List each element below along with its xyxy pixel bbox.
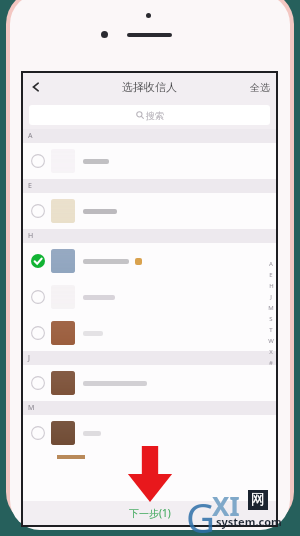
button[interactable]: 全选 <box>250 81 270 94</box>
staticText: M <box>28 403 35 413</box>
staticText: J <box>28 353 30 363</box>
button[interactable]: W <box>268 337 274 345</box>
button[interactable]: J <box>270 293 272 301</box>
button[interactable] <box>23 315 276 351</box>
button[interactable]: 下一步(1) <box>23 501 276 525</box>
button[interactable] <box>23 279 276 315</box>
staticText: 网 <box>251 491 265 509</box>
staticText: H <box>28 231 34 241</box>
button[interactable] <box>23 415 276 451</box>
button[interactable] <box>23 193 276 229</box>
button[interactable] <box>23 143 276 179</box>
staticText: 选择收信人 <box>122 80 177 94</box>
staticText: XI <box>212 488 240 523</box>
button[interactable] <box>23 365 276 401</box>
staticText: 下一步(1) <box>129 506 171 520</box>
button[interactable]: M <box>268 304 274 312</box>
button[interactable]: S <box>269 315 273 323</box>
staticText: A <box>28 131 33 141</box>
button[interactable]: 搜索 <box>29 105 270 125</box>
button[interactable]: X <box>269 348 273 356</box>
staticText: 搜索 <box>146 110 164 121</box>
staticText: 全选 <box>250 81 270 94</box>
button[interactable]: H <box>269 282 274 290</box>
button[interactable] <box>23 243 276 279</box>
staticText: system.com <box>216 514 282 529</box>
button[interactable]: Back <box>23 74 49 100</box>
button[interactable]: # <box>269 359 273 367</box>
staticText: G <box>186 490 216 536</box>
button[interactable]: E <box>269 271 273 279</box>
button[interactable]: T <box>269 326 273 334</box>
button[interactable]: A <box>269 260 273 268</box>
staticText: E <box>28 181 32 191</box>
